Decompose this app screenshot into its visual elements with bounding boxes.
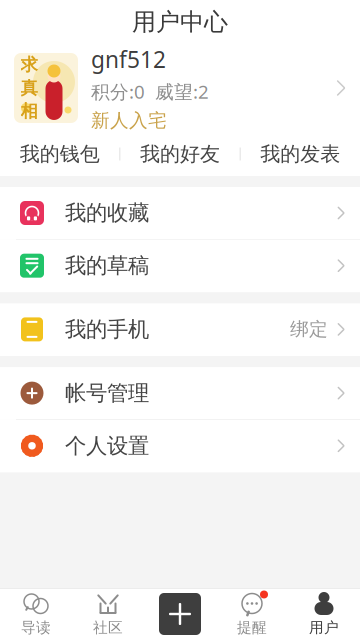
- staticText: 帐号管理: [65, 380, 149, 406]
- button[interactable]: 提醒: [216, 588, 288, 640]
- button[interactable]: 用户: [288, 588, 360, 640]
- staticText: gnf512: [91, 44, 166, 74]
- button[interactable]: 发布: [144, 588, 216, 640]
- button[interactable]: 求: [0, 44, 360, 132]
- staticText: 真: [20, 77, 37, 99]
- button[interactable]: 我的发表: [241, 132, 360, 176]
- staticText: 积分:0 威望:2: [91, 79, 209, 104]
- staticText: 我的草稿: [65, 253, 149, 279]
- staticText: 我的发表: [260, 142, 340, 166]
- button[interactable]: 社区: [72, 588, 144, 640]
- button[interactable]: 我的钱包: [0, 132, 119, 176]
- staticText: 提醒: [237, 618, 267, 636]
- staticText: 社区: [93, 618, 123, 636]
- staticText: 个人设置: [65, 433, 149, 459]
- staticText: 我的好友: [140, 142, 220, 166]
- staticText: 导读: [21, 618, 51, 636]
- staticText: 我的收藏: [65, 200, 149, 226]
- button[interactable]: 个人设置: [0, 420, 360, 472]
- staticText: 用户: [309, 618, 339, 636]
- button[interactable]: 帐号管理: [0, 367, 360, 420]
- staticText: 我的手机: [65, 316, 149, 342]
- staticText: 绑定: [290, 318, 328, 341]
- button[interactable]: 我的手机: [0, 303, 360, 356]
- button[interactable]: 导读: [0, 588, 72, 640]
- button[interactable]: 我的好友: [120, 132, 240, 176]
- staticText: 相: [20, 101, 37, 122]
- button[interactable]: 我的收藏: [0, 187, 360, 240]
- staticText: 新人入宅: [91, 109, 167, 132]
- button[interactable]: 我的草稿: [0, 240, 360, 292]
- staticText: 我的钱包: [20, 142, 100, 166]
- staticText: 求: [20, 54, 37, 75]
- staticText: 用户中心: [132, 7, 228, 37]
